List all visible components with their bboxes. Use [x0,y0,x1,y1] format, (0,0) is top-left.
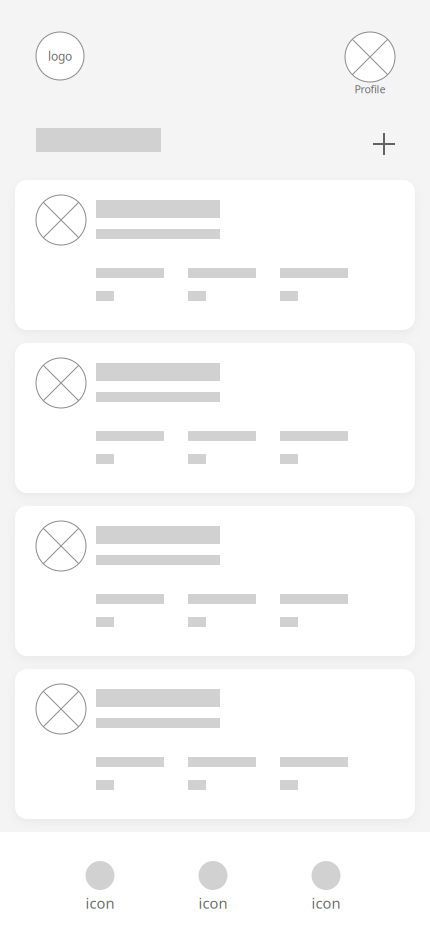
button[interactable]: Item 1 [15,180,415,330]
staticText: logo [48,48,72,64]
button[interactable]: Add [362,122,406,166]
button[interactable]: Profile [335,32,405,96]
button[interactable]: icon [57,832,143,932]
staticText: icon [198,893,227,913]
button[interactable]: icon [283,832,369,932]
staticText: icon [85,893,114,913]
button[interactable]: Item 3 [15,506,415,656]
staticText: icon [311,893,340,913]
button[interactable]: Item 4 [15,669,415,819]
button[interactable]: Item 2 [15,343,415,493]
button[interactable]: logo [36,32,84,80]
button[interactable]: icon [170,832,256,932]
staticText: Profile [354,82,385,96]
